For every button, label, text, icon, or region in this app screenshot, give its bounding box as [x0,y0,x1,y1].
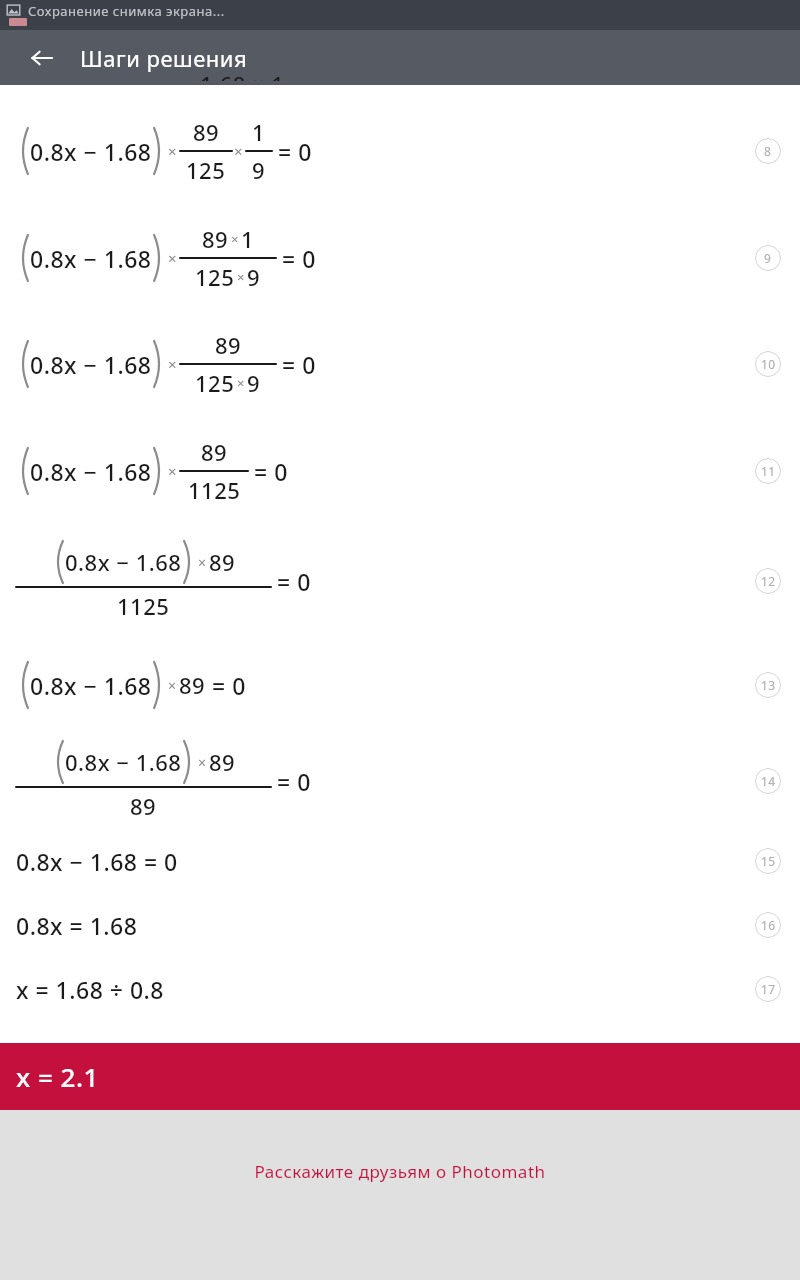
staticText: x = 2.1 [16,1059,99,1094]
staticText: 11 [761,463,776,479]
button[interactable]: 17 [755,976,781,1002]
staticText: 10 [761,356,776,372]
staticText: 89 [193,117,220,147]
staticText: × [237,268,245,286]
staticText: 89 [209,547,236,577]
button[interactable]: 8 [755,138,781,164]
staticText: × [198,553,207,572]
staticText: = 0 [282,349,316,380]
staticText: × [168,248,178,268]
staticText: = 0 [282,243,316,274]
staticText: Сохранение снимка экрана... [28,2,225,20]
staticText: × [231,230,239,248]
staticText: 12 [761,573,776,589]
staticText: Расскажите друзьям о Photomath [254,1160,546,1183]
staticText: 14 [761,773,776,789]
button[interactable]: 0.8x − 1.68 [0,205,800,311]
staticText: 0.8x − 1.68 [30,670,152,701]
button[interactable]: 10 [755,351,781,377]
staticText: × [237,374,245,392]
button[interactable]: 13 [755,672,781,698]
button[interactable]: 11 [755,458,781,484]
button[interactable]: 0.8x − 1.68 = 0 [0,829,800,893]
staticText: 9 [764,250,772,266]
staticText: 16 [761,917,776,933]
staticText: 15 [761,853,776,869]
staticText: 1.68 × 1 [200,69,285,81]
staticText: = 0 [278,136,312,167]
staticText: 0.8x − 1.68 = 0 [16,846,178,877]
staticText: 1125 [188,475,241,505]
staticText: 89 [201,437,228,467]
staticText: 1 [241,224,255,254]
button[interactable]: 0.8x − 1.68 [0,637,800,733]
button[interactable]: 14 [755,768,781,794]
staticText: × [198,753,207,772]
button[interactable]: 9 [755,245,781,271]
staticText: 9 [252,155,266,185]
button[interactable]: Расскажите друзьям о Photomath [242,1154,558,1189]
button[interactable]: 0.8x − 1.68 [0,524,800,637]
button[interactable]: 0.8x − 1.68 [0,417,800,524]
staticText: 0.8x = 1.68 [16,910,138,941]
staticText: = 0 [277,566,311,597]
staticText: 89 [215,330,242,360]
button[interactable]: 0.8x = 1.68 [0,893,800,957]
button[interactable]: 0.8x − 1.68 [0,311,800,417]
button[interactable]: 0.8x − 1.68 [0,97,800,205]
staticText: 9 [247,262,261,292]
staticText: 125 [195,368,235,398]
staticText: 89 [179,670,206,700]
staticText: = 0 [254,456,288,487]
staticText: 0.8x − 1.68 [30,349,152,380]
staticText: 89 [202,224,229,254]
staticText: × [168,461,178,481]
staticText: 0.8x − 1.68 [30,456,152,487]
staticText: × [168,141,178,161]
staticText: × [168,354,178,374]
staticText: = 0 [277,766,311,797]
staticText: 1 [252,117,266,147]
staticText: 8 [764,143,772,159]
button[interactable]: x = 1.68 ÷ 0.8 [0,957,800,1021]
staticText: × [168,676,177,695]
staticText: 125 [195,262,235,292]
button[interactable]: x = 2.1 [0,1043,800,1110]
button[interactable]: 12 [755,568,781,594]
staticText: 17 [761,981,776,997]
staticText: 0.8x − 1.68 [30,136,152,167]
staticText: 0.8x − 1.68 [30,243,152,274]
staticText: 0.8x − 1.68 [65,747,182,777]
button[interactable]: 0.8x − 1.68 [0,733,800,829]
staticText: 1125 [117,591,170,621]
staticText: 0.8x − 1.68 [65,547,182,577]
button[interactable]: 16 [755,912,781,938]
staticText: × [234,141,244,161]
staticText: 89 [209,747,236,777]
button[interactable]: Back [22,38,62,78]
staticText: 9 [247,368,261,398]
button[interactable]: 15 [755,848,781,874]
staticText: x = 1.68 ÷ 0.8 [16,974,165,1005]
staticText: 89 [130,791,157,821]
staticText: = 0 [212,670,246,701]
staticText: 125 [186,155,226,185]
staticText: 13 [761,677,776,693]
staticText: Шаги решения [80,43,248,73]
